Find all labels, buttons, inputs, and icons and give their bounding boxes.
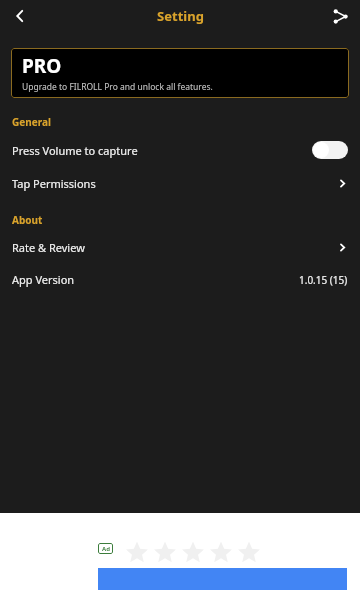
staticText: Upgrade to FILROLL Pro and unlock all fe… — [22, 81, 213, 93]
staticText: General — [12, 115, 51, 129]
button[interactable]: Press Volume to capture — [0, 133, 360, 167]
staticText: Rate & Review — [12, 240, 337, 255]
staticText: Ad — [102, 545, 110, 553]
staticText: Setting — [157, 7, 204, 25]
button[interactable]: PRO — [11, 48, 349, 98]
staticText: PRO — [22, 53, 62, 79]
button[interactable]: Share — [320, 0, 360, 32]
button[interactable]: Back — [0, 0, 40, 32]
staticText: Tap Permissions — [12, 176, 337, 191]
staticText: About — [12, 213, 43, 227]
button[interactable]: Rate & Review — [0, 231, 360, 264]
staticText: Press Volume to capture — [12, 143, 312, 158]
button[interactable]: Tap Permissions — [0, 167, 360, 200]
staticText: App Version — [12, 272, 299, 287]
staticText: 1.0.15 (15) — [299, 273, 348, 287]
button[interactable]: App Version — [0, 264, 360, 295]
